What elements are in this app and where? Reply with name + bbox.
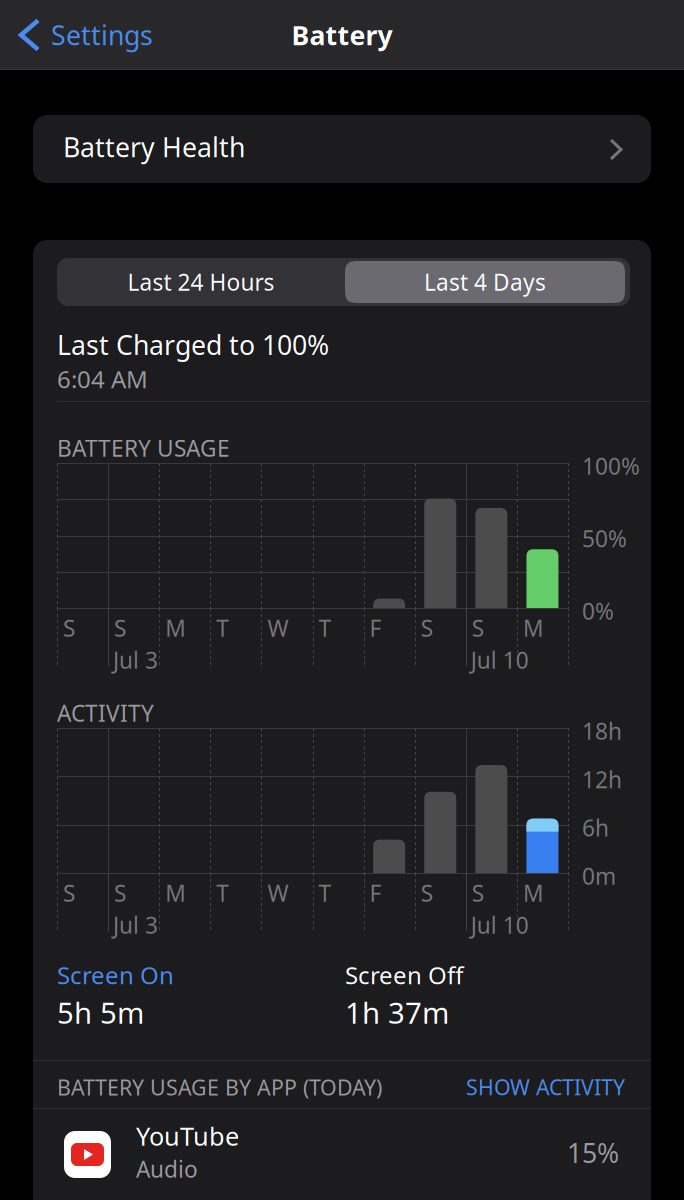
staticText: 1h 37m: [345, 993, 449, 1032]
staticText: 6h: [582, 813, 609, 843]
staticText: Battery Health: [63, 129, 245, 165]
staticText: Screen Off: [345, 959, 464, 991]
staticText: BATTERY USAGE: [57, 433, 230, 463]
staticText: F: [370, 878, 382, 908]
staticText: 50%: [582, 523, 627, 554]
button[interactable]: SHOW ACTIVITY: [425, 1074, 625, 1100]
staticText: YouTube: [136, 1119, 239, 1153]
staticText: S: [114, 613, 126, 643]
staticText: Settings: [51, 17, 153, 53]
staticText: S: [63, 878, 75, 908]
staticText: M: [165, 878, 186, 908]
staticText: BATTERY USAGE BY APP (TODAY): [57, 1073, 382, 1101]
button[interactable]: Last 24 Hours: [57, 258, 345, 306]
staticText: Jul 3: [113, 645, 158, 675]
staticText: ACTIVITY: [57, 698, 154, 728]
staticText: F: [370, 613, 382, 643]
button[interactable]: YouTube: [33, 1109, 651, 1200]
staticText: Jul 10: [471, 910, 529, 940]
staticText: S: [421, 613, 433, 643]
staticText: 0m: [582, 861, 616, 891]
staticText: 0%: [582, 596, 614, 626]
staticText: M: [523, 878, 544, 908]
staticText: M: [165, 613, 186, 643]
staticText: W: [267, 878, 288, 908]
staticText: 18h: [582, 716, 622, 746]
staticText: T: [318, 613, 331, 643]
button[interactable]: Battery Health: [33, 115, 651, 183]
staticText: M: [523, 613, 544, 643]
staticText: 12h: [582, 764, 622, 794]
staticText: Last 24 Hours: [127, 267, 274, 297]
staticText: Screen On: [57, 959, 174, 991]
staticText: S: [114, 878, 126, 908]
button[interactable]: Last 4 Days: [345, 261, 625, 303]
staticText: T: [318, 878, 331, 908]
staticText: Last 4 Days: [424, 267, 546, 297]
button[interactable]: Settings: [0, 0, 153, 70]
staticText: Audio: [136, 1154, 198, 1184]
staticText: Last Charged to 100%: [57, 327, 329, 362]
staticText: S: [421, 878, 433, 908]
staticText: Battery: [291, 17, 392, 53]
staticText: W: [267, 613, 288, 643]
staticText: S: [63, 613, 75, 643]
staticText: S: [472, 878, 484, 908]
staticText: 6:04 AM: [57, 363, 148, 395]
staticText: SHOW ACTIVITY: [466, 1073, 625, 1101]
staticText: T: [216, 613, 229, 643]
staticText: S: [472, 613, 484, 643]
staticText: 100%: [582, 451, 640, 481]
staticText: 5h 5m: [57, 993, 144, 1032]
staticText: Jul 10: [471, 645, 529, 675]
staticText: 15%: [567, 1135, 619, 1170]
staticText: T: [216, 878, 229, 908]
staticText: Jul 3: [113, 910, 158, 940]
